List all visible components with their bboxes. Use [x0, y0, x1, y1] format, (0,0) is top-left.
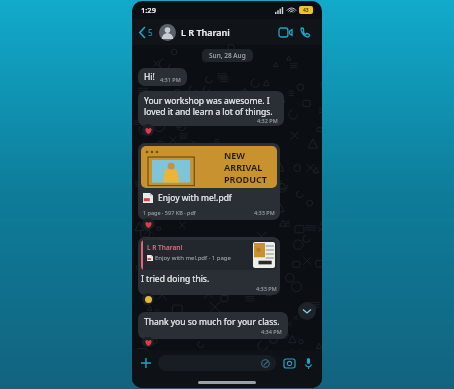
button[interactable]: Reaction — [142, 293, 154, 305]
staticText: NEW — [224, 149, 246, 161]
button[interactable] — [158, 355, 276, 371]
button[interactable]: Reaction — [142, 218, 154, 230]
button[interactable]: Scroll to bottom — [298, 302, 316, 320]
button[interactable]: Reaction — [142, 337, 154, 347]
staticText: ARRIVAL — [224, 161, 263, 173]
button[interactable]: Camera — [281, 355, 297, 371]
button[interactable]: Video call — [275, 22, 295, 42]
button[interactable]: Thank you so much for your class. — [138, 312, 288, 339]
button[interactable]: L R Tharani — [138, 237, 280, 295]
button[interactable]: 5 — [139, 27, 155, 38]
button[interactable]: Your workshop was awesome. I loved it an… — [138, 91, 284, 126]
staticText: Sun, 28 Aug — [209, 51, 246, 60]
staticText: 43 — [303, 7, 309, 14]
button[interactable]: NEW — [138, 143, 280, 220]
button[interactable]: Reaction — [142, 124, 154, 136]
staticText: Enjoy with me!.pdf · 1 page — [155, 254, 231, 262]
button[interactable]: Voice call — [295, 22, 315, 42]
staticText: 5 — [148, 27, 153, 38]
staticText: Hi! — [144, 71, 155, 83]
staticText: 1:29 — [141, 5, 156, 15]
staticText: 1 page · 597 KB · pdf — [143, 209, 196, 216]
staticText: 4:33 PM — [256, 285, 277, 292]
staticText: 4:33 PM — [254, 209, 275, 216]
staticText: Your workshop was awesome. I loved it an… — [144, 95, 278, 117]
staticText: L R Tharani — [147, 243, 183, 252]
staticText: 4:34 PM — [261, 328, 282, 335]
staticText: Thank you so much for your class. — [144, 316, 280, 328]
staticText: Enjoy with me!.pdf — [158, 192, 232, 204]
staticText: I tried doing this. — [141, 273, 210, 285]
button[interactable]: Hi! — [138, 68, 187, 86]
staticText: 4:32 PM — [257, 117, 278, 124]
staticText: 4:31 PM — [160, 76, 181, 83]
staticText: L R Tharani — [181, 26, 230, 38]
staticText: PRODUCT — [224, 173, 267, 185]
button[interactable]: Voice message — [300, 355, 316, 371]
button[interactable]: Attach — [138, 355, 154, 371]
